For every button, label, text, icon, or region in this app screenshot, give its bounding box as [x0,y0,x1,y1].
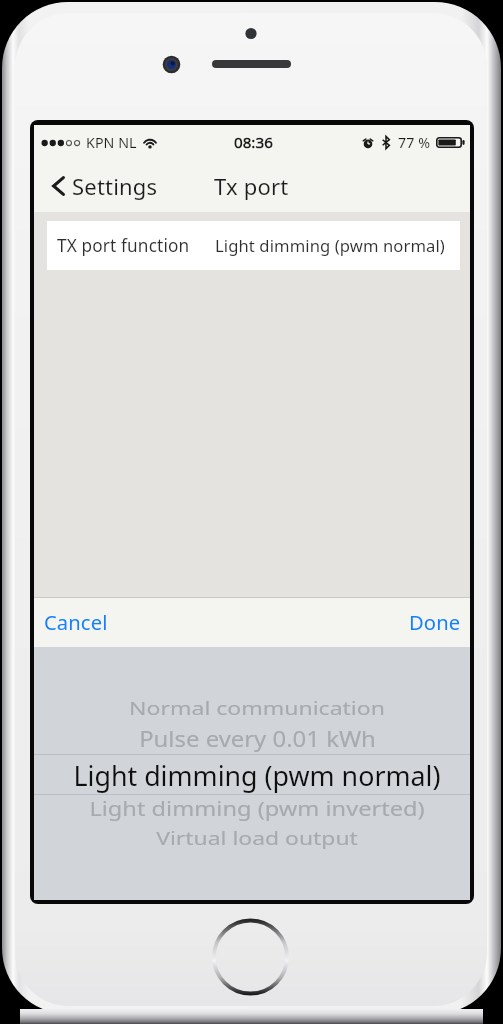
button[interactable]: Normal communication [39,689,474,725]
staticText: Pulse every 0.01 kWh [139,724,376,753]
staticText: Light dimming (pwm normal) [73,757,441,793]
staticText: Tx port [214,171,289,201]
staticText: 08:36 [234,132,273,153]
button[interactable]: Light dimming (pwm inverted) [39,790,474,826]
button[interactable]: Cancel [34,602,116,642]
staticText: TX port function [57,234,190,257]
button[interactable]: Done [401,602,470,642]
button[interactable]: Settings [34,163,168,209]
button[interactable]: Virtual load output [39,820,474,856]
button[interactable]: Pulse every 0.01 kWh [39,720,474,756]
staticText: Light dimming (pwm inverted) [89,794,425,822]
staticText: Normal communication [129,696,385,719]
staticText: 77 % [398,133,431,152]
button[interactable]: TX port function [47,221,460,270]
staticText: Virtual load output [156,827,358,850]
staticText: KPN NL [86,133,137,152]
staticText: Done [409,608,461,636]
staticText: Settings [72,171,158,201]
staticText: Cancel [44,608,108,636]
button[interactable]: Light dimming (pwm normal) [39,757,474,793]
staticText: Light dimming (pwm normal) [215,234,445,257]
